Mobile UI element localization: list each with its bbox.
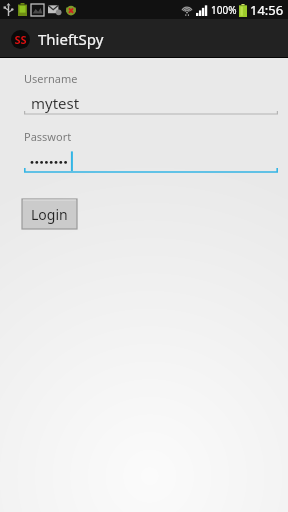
staticText: Username bbox=[24, 71, 78, 86]
staticText: SS bbox=[14, 32, 27, 47]
button[interactable]: Login bbox=[22, 199, 77, 229]
staticText: 14:56 bbox=[250, 1, 284, 19]
button[interactable] bbox=[24, 149, 278, 173]
staticText: 100% bbox=[211, 3, 237, 17]
staticText: mytest bbox=[31, 93, 80, 113]
staticText: ThieftSpy bbox=[38, 29, 104, 49]
staticText: Login bbox=[31, 205, 68, 224]
button[interactable]: mytest bbox=[24, 91, 278, 115]
staticText: Passwort bbox=[24, 129, 72, 144]
